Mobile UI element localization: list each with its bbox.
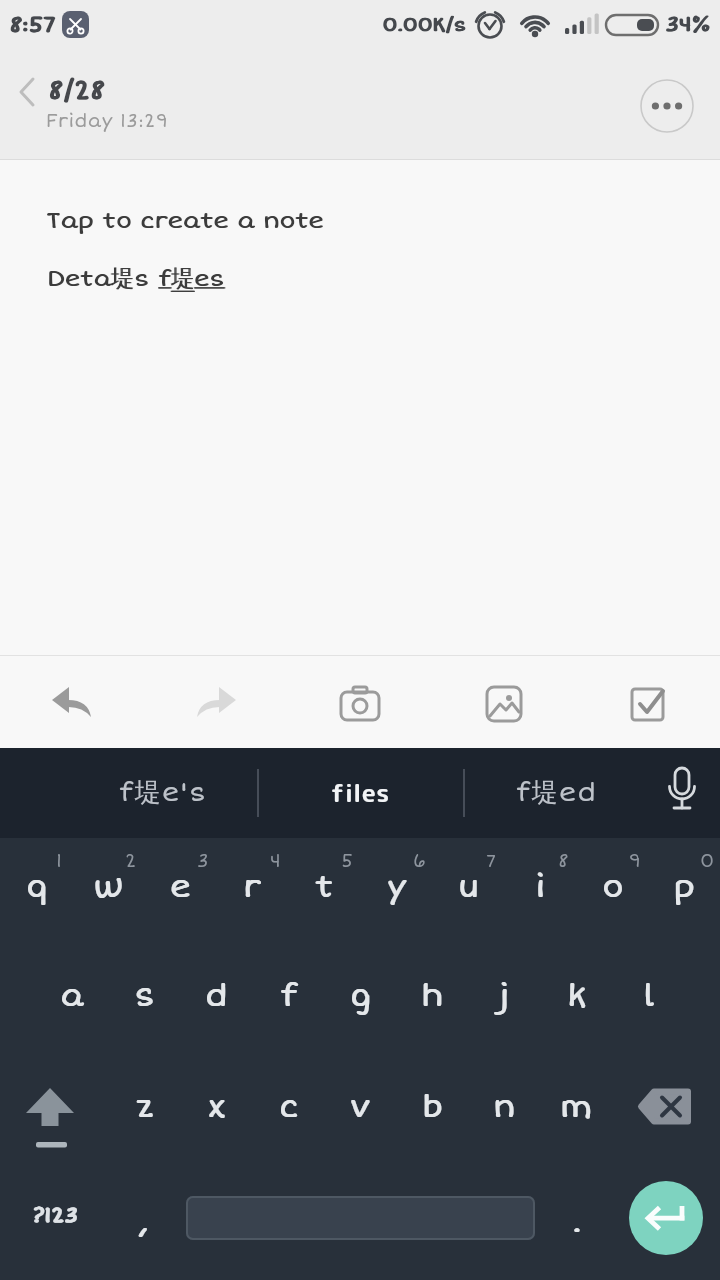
button[interactable]: k: [541, 963, 611, 1029]
button[interactable]: [8, 76, 44, 112]
staticText: 2: [125, 850, 137, 872]
button[interactable]: f堤ed: [457, 767, 657, 817]
staticText: g: [350, 977, 371, 1015]
staticText: b: [422, 1088, 443, 1126]
staticText: g: [351, 977, 372, 1015]
staticText: Deta堤s: [48, 264, 159, 293]
button[interactable]: u: [433, 857, 503, 917]
staticText: p: [674, 868, 696, 906]
button[interactable]: z: [109, 1074, 179, 1140]
button[interactable]: a: [37, 963, 107, 1029]
button[interactable]: e: [145, 857, 215, 917]
staticText: a: [60, 977, 84, 1015]
button[interactable]: [324, 669, 396, 741]
staticText: Deta堤s: [47, 264, 158, 293]
button[interactable]: f: [253, 963, 323, 1029]
staticText: h: [422, 977, 444, 1015]
button[interactable]: ?123: [13, 1182, 97, 1248]
staticText: c: [280, 1088, 299, 1126]
staticText: f堤e's: [119, 776, 208, 809]
staticText: 7: [486, 850, 497, 872]
button[interactable]: l: [613, 963, 683, 1029]
staticText: v: [351, 1088, 371, 1126]
button[interactable]: v: [325, 1074, 395, 1140]
staticText: b: [423, 1088, 444, 1126]
staticText: r: [243, 868, 261, 906]
staticText: f: [280, 977, 297, 1015]
staticText: m: [561, 1088, 593, 1126]
button[interactable]: [641, 80, 693, 132]
button[interactable]: .: [548, 1192, 604, 1252]
button[interactable]: y: [361, 857, 431, 917]
button[interactable]: r: [217, 857, 287, 917]
staticText: f堤ed: [516, 776, 598, 809]
button[interactable]: t: [289, 857, 359, 917]
button[interactable]: w: [73, 857, 143, 917]
button[interactable]: i: [505, 857, 575, 917]
staticText: q: [27, 868, 48, 906]
staticText: Friday 13:29: [46, 110, 169, 132]
button[interactable]: s: [109, 963, 179, 1029]
staticText: 1: [56, 850, 62, 872]
button[interactable]: g: [325, 963, 395, 1029]
button[interactable]: [468, 669, 540, 741]
button[interactable]: f堤e's: [63, 767, 263, 817]
button[interactable]: m: [541, 1074, 611, 1140]
staticText: y: [388, 868, 407, 906]
button[interactable]: [186, 1196, 535, 1240]
button[interactable]: [630, 1074, 706, 1150]
staticText: 0.00K/s: [383, 13, 467, 36]
button[interactable]: x: [181, 1074, 251, 1140]
button[interactable]: ,: [115, 1192, 171, 1252]
staticText: 34%: [666, 11, 711, 37]
staticText: 5: [341, 850, 354, 872]
button[interactable]: o: [577, 857, 647, 917]
staticText: 8:57: [9, 11, 56, 38]
button[interactable]: h: [397, 963, 467, 1029]
button[interactable]: q: [1, 857, 71, 917]
button[interactable]: j: [469, 963, 539, 1029]
staticText: o: [602, 868, 623, 906]
staticText: s: [135, 977, 156, 1015]
button[interactable]: b: [397, 1074, 467, 1140]
staticText: r: [244, 868, 262, 906]
staticText: h: [421, 977, 443, 1015]
button[interactable]: Tap to create a note: [46, 204, 446, 238]
staticText: z: [136, 1088, 153, 1126]
staticText: l: [643, 977, 654, 1015]
button[interactable]: c: [253, 1074, 323, 1140]
button[interactable]: [180, 669, 252, 741]
staticText: x: [208, 1088, 226, 1126]
button[interactable]: n: [469, 1074, 539, 1140]
staticText: i: [536, 868, 546, 906]
staticText: d: [205, 977, 227, 1015]
staticText: e: [170, 868, 191, 906]
staticText: 3: [197, 850, 209, 872]
staticText: ,: [138, 1203, 148, 1241]
staticText: w: [94, 868, 124, 906]
button[interactable]: [612, 669, 684, 741]
staticText: v: [350, 1088, 370, 1126]
button[interactable]: d: [181, 963, 251, 1029]
staticText: j: [500, 977, 510, 1015]
staticText: i: [535, 868, 545, 906]
button[interactable]: files: [260, 767, 460, 817]
staticText: 9: [629, 850, 641, 872]
staticText: 8: [558, 850, 569, 872]
button[interactable]: [14, 1074, 90, 1150]
staticText: d: [206, 977, 228, 1015]
staticText: m: [560, 1088, 592, 1126]
button[interactable]: [658, 768, 708, 818]
staticText: 6: [413, 850, 426, 872]
button[interactable]: [36, 669, 108, 741]
staticText: files: [331, 775, 390, 810]
button[interactable]: p: [649, 857, 719, 917]
staticText: t: [316, 868, 334, 906]
staticText: Tap to create a note: [46, 207, 324, 235]
staticText: a: [61, 977, 85, 1015]
staticText: z: [137, 1088, 154, 1126]
staticText: u: [458, 868, 479, 906]
staticText: ?123: [32, 1202, 78, 1228]
button[interactable]: [629, 1181, 703, 1255]
staticText: 0.00K/s: [382, 13, 466, 36]
